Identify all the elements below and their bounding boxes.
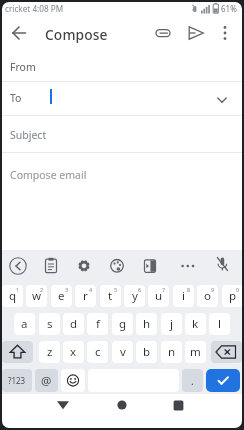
button[interactable] <box>109 257 125 275</box>
staticText: g <box>119 316 127 332</box>
button[interactable]: o <box>197 285 218 307</box>
button[interactable]: Subject <box>0 116 244 152</box>
staticText: j <box>170 316 173 332</box>
button[interactable] <box>8 256 28 276</box>
staticText: a <box>21 316 28 332</box>
staticText: 6 <box>138 286 142 293</box>
staticText: 2 <box>40 286 44 293</box>
button[interactable]: To <box>0 82 244 115</box>
button[interactable]: i <box>173 285 194 307</box>
button[interactable] <box>211 341 242 363</box>
staticText: 1 <box>16 286 20 293</box>
button[interactable]: p <box>222 285 243 307</box>
button[interactable]: u <box>148 285 169 307</box>
button[interactable]: @ <box>35 369 58 392</box>
staticText: To <box>10 91 22 105</box>
staticText: u <box>155 288 163 304</box>
button[interactable]: Compose email <box>0 153 244 250</box>
staticText: c <box>95 344 101 360</box>
button[interactable] <box>218 24 232 42</box>
button[interactable]: y <box>124 285 145 307</box>
staticText: s <box>47 316 53 332</box>
staticText: t <box>108 288 113 304</box>
staticText: m <box>190 344 201 360</box>
staticText: cricket 4:08 PM <box>5 3 64 14</box>
button[interactable]: q <box>2 285 23 307</box>
staticText: 3 <box>65 286 69 293</box>
button[interactable]: c <box>87 341 108 363</box>
button[interactable]: e <box>51 285 72 307</box>
staticText: 9 <box>211 286 215 293</box>
button[interactable] <box>153 23 173 43</box>
button[interactable] <box>173 400 184 411</box>
staticText: e <box>58 288 65 304</box>
button[interactable] <box>214 93 230 107</box>
button[interactable]: g <box>112 313 133 335</box>
staticText: 7 <box>162 286 166 293</box>
button[interactable]: n <box>161 341 182 363</box>
staticText: h <box>143 316 151 332</box>
button[interactable]: l <box>209 313 230 335</box>
button[interactable]: k <box>185 313 206 335</box>
button[interactable] <box>214 255 230 275</box>
button[interactable]: r <box>75 285 96 307</box>
staticText: x <box>70 344 77 360</box>
button[interactable] <box>56 399 70 411</box>
staticText: 8 <box>187 286 191 293</box>
button[interactable] <box>206 369 240 392</box>
button[interactable] <box>10 24 28 42</box>
staticText: b <box>143 344 151 360</box>
staticText: o <box>204 288 211 304</box>
button[interactable]: v <box>112 341 133 363</box>
staticText: l <box>218 316 221 332</box>
button[interactable]: x <box>63 341 84 363</box>
button[interactable]: j <box>161 313 182 335</box>
staticText: v <box>120 344 126 360</box>
staticText: 5 <box>114 286 118 293</box>
staticText: Compose email <box>10 168 87 182</box>
button[interactable]: t <box>100 285 121 307</box>
staticText: Subject <box>10 128 47 142</box>
staticText: . <box>191 374 194 388</box>
staticText: d <box>70 316 78 332</box>
staticText: z <box>47 344 53 360</box>
staticText: p <box>229 288 237 304</box>
button[interactable]: f <box>87 313 108 335</box>
button[interactable] <box>61 369 85 392</box>
staticText: ?123 <box>8 375 26 386</box>
button[interactable] <box>186 23 206 43</box>
staticText: @ <box>41 373 52 389</box>
button[interactable] <box>2 341 33 363</box>
button[interactable]: h <box>136 313 157 335</box>
staticText: From <box>10 60 36 74</box>
staticText: 4 <box>89 286 93 293</box>
staticText: y <box>132 288 138 304</box>
staticText: i <box>182 288 185 304</box>
button[interactable] <box>178 256 198 276</box>
staticText: 61% <box>221 3 237 14</box>
button[interactable]: s <box>39 313 60 335</box>
button[interactable]: d <box>63 313 84 335</box>
button[interactable]: ?123 <box>2 369 32 392</box>
button[interactable]: From <box>0 53 244 81</box>
staticText: w <box>32 288 42 304</box>
button[interactable]: a <box>14 313 35 335</box>
button[interactable]: w <box>26 285 47 307</box>
staticText: k <box>192 316 199 332</box>
button[interactable]: z <box>39 341 60 363</box>
staticText: q <box>9 288 17 304</box>
button[interactable] <box>117 400 127 410</box>
button[interactable]: b <box>136 341 157 363</box>
button[interactable] <box>43 257 59 275</box>
staticText: n <box>168 344 176 360</box>
staticText: 0 <box>236 286 240 293</box>
staticText: r <box>83 288 88 304</box>
button[interactable]: . <box>182 369 203 392</box>
staticText: Compose <box>45 25 108 44</box>
staticText: f <box>96 316 100 332</box>
button[interactable]: m <box>185 341 206 363</box>
button[interactable] <box>76 257 92 275</box>
button[interactable] <box>142 257 158 275</box>
